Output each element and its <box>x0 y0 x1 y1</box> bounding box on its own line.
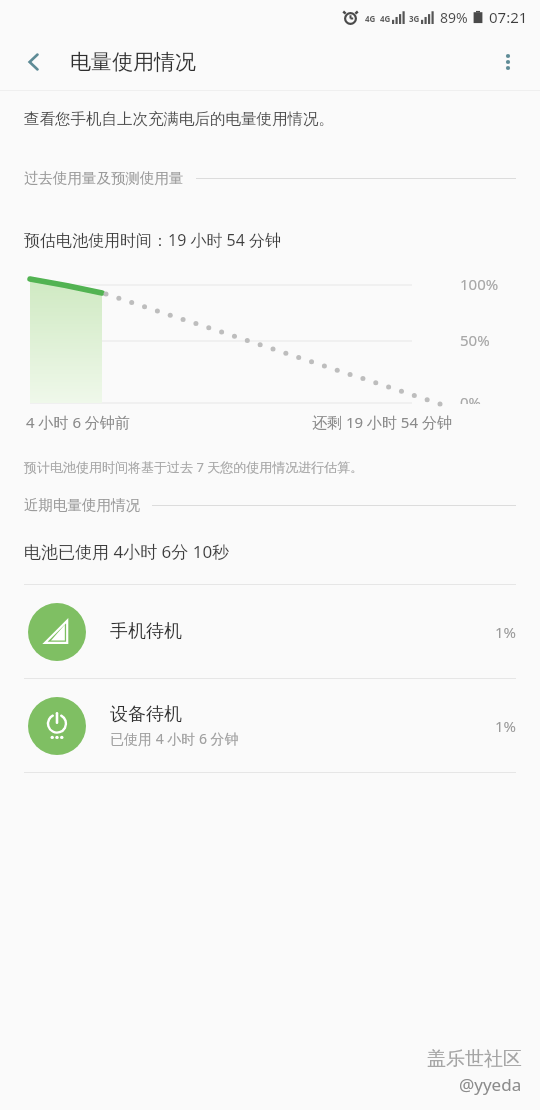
staticText: 07:21 <box>489 7 528 27</box>
staticText: 0% <box>460 392 482 404</box>
staticText: 查看您手机自上次充满电后的电量使用情况。 <box>24 109 334 129</box>
button[interactable]: More options <box>484 38 532 86</box>
staticText: 1% <box>494 622 516 642</box>
staticText: @yyeda <box>459 1073 522 1096</box>
staticText: 电量使用情况 <box>70 49 196 75</box>
staticText: 50% <box>460 330 490 350</box>
staticText: 1% <box>494 716 516 736</box>
staticText: 过去使用量及预测使用量 <box>24 169 184 187</box>
staticText: 4G <box>365 13 376 24</box>
staticText: 已使用 4 小时 6 分钟 <box>110 729 239 748</box>
staticText: 还剩 19 小时 54 分钟 <box>312 412 452 432</box>
button[interactable]: 手机待机 <box>0 585 540 678</box>
button[interactable]: Back <box>10 38 58 86</box>
staticText: 89% <box>440 8 468 27</box>
staticText: 电池已使用 4小时 6分 10秒 <box>24 540 230 563</box>
button[interactable]: 设备待机 <box>0 679 540 772</box>
staticText: 手机待机 <box>110 620 182 643</box>
staticText: 100% <box>460 274 499 294</box>
staticText: 近期电量使用情况 <box>24 496 140 514</box>
staticText: 预估电池使用时间：19 小时 54 分钟 <box>24 229 282 251</box>
staticText: 4G <box>380 13 391 24</box>
staticText: 设备待机 <box>110 703 182 726</box>
staticText: 3G <box>409 13 420 24</box>
staticText: 4 小时 6 分钟前 <box>26 412 130 432</box>
staticText: 盖乐世社区 <box>427 1047 522 1071</box>
staticText: 预计电池使用时间将基于过去 7 天您的使用情况进行估算。 <box>24 458 364 476</box>
